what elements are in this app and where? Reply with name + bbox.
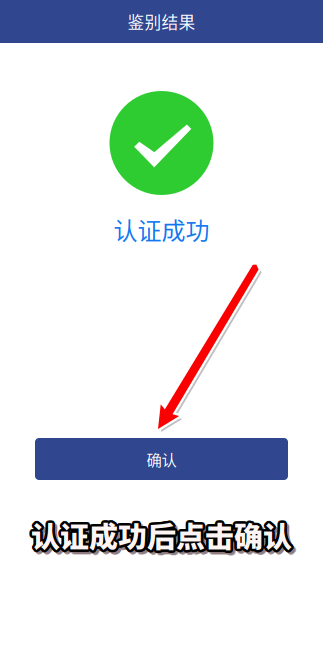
staticText: 认证成功后点击确认 [31, 514, 292, 556]
staticText: 认证成功后点击确认 [29, 512, 290, 554]
staticText: 认证成功后点击确认 [35, 515, 296, 557]
staticText: 认证成功后点击确认 [32, 512, 293, 554]
staticText: 认证成功后点击确认 [33, 515, 294, 557]
staticText: 认证成功后点击确认 [31, 512, 292, 553]
staticText: 认证成功后点击确认 [36, 517, 297, 559]
staticText: 认证成功 [113, 212, 209, 247]
staticText: 确认 [146, 448, 176, 470]
staticText: 认证成功后点击确认 [33, 514, 294, 556]
staticText: 认证成功后点击确认 [31, 516, 292, 558]
staticText: 认证成功后点击确认 [31, 516, 292, 558]
staticText: 认证成功后点击确认 [29, 515, 290, 557]
staticText: 认证成功后点击确认 [33, 512, 294, 554]
staticText: 认证成功后点击确认 [30, 516, 291, 558]
staticText: 认证成功后点击确认 [29, 513, 290, 555]
staticText: 认证成功后点击确认 [31, 517, 292, 559]
staticText: 认证成功后点击确认 [31, 517, 292, 558]
staticText: 认证成功后点击确认 [36, 517, 297, 558]
staticText: 鉴别结果 [127, 9, 195, 33]
staticText: 认证成功后点击确认 [30, 512, 291, 554]
button[interactable]: 确认 [35, 438, 288, 480]
staticText: 认证成功后点击确认 [33, 516, 294, 558]
staticText: 认证成功后点击确认 [33, 519, 294, 561]
staticText: 认证成功后点击确认 [29, 516, 290, 558]
staticText: 认证成功后点击确认 [32, 515, 293, 557]
staticText: 认证成功后点击确认 [33, 513, 294, 555]
staticText: 认证成功后点击确认 [32, 516, 293, 558]
staticText: 认证成功后点击确认 [32, 518, 293, 560]
staticText: 认证成功后点击确认 [35, 518, 296, 560]
staticText: 认证成功后点击确认 [34, 519, 295, 561]
staticText: 认证成功后点击确认 [34, 514, 295, 556]
staticText: 认证成功后点击确认 [34, 514, 295, 556]
staticText: 认证成功后点击确认 [29, 514, 290, 556]
staticText: 认证成功后点击确认 [36, 516, 297, 558]
staticText: 认证成功后点击确认 [33, 514, 294, 556]
staticText: 认证成功后点击确认 [34, 519, 295, 561]
